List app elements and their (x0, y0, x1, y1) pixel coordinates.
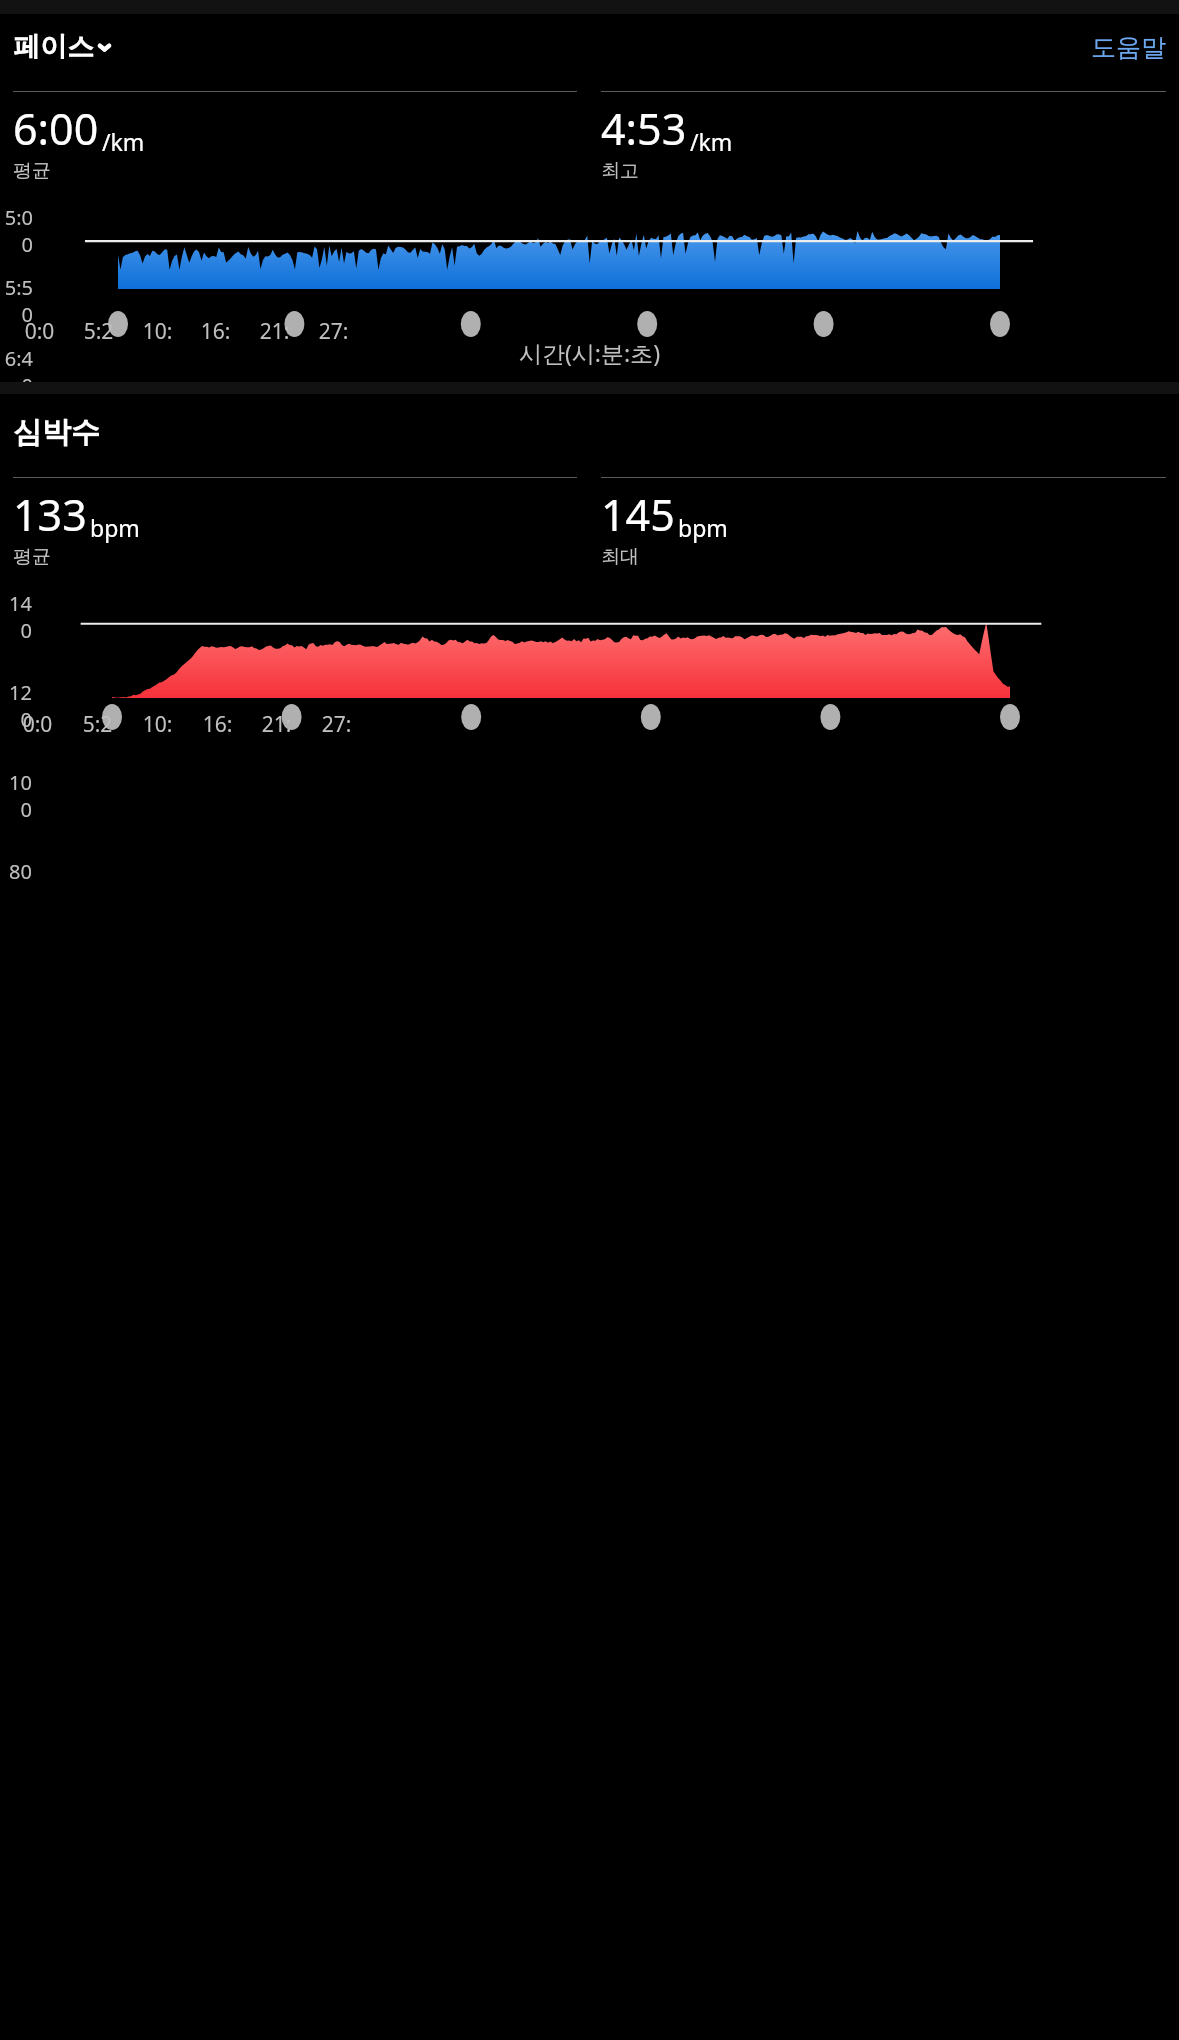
staticText: 10:51 (139, 317, 176, 346)
staticText: 7:30 (0, 415, 33, 469)
staticText: 평균 (13, 545, 51, 569)
staticText: 6:00 (13, 99, 99, 158)
button[interactable]: 도움말 (1091, 32, 1166, 63)
staticText: 최대 (601, 545, 639, 569)
staticText: 0:00 (19, 710, 56, 739)
staticText: 6:40 (0, 345, 33, 399)
staticText: 심박수 (13, 414, 100, 451)
staticText: 16:17 (199, 710, 236, 739)
button[interactable]: 심박수 (13, 414, 100, 451)
staticText: 5:00 (0, 204, 33, 258)
staticText: 5:50 (0, 274, 33, 328)
staticText: 평균 (13, 159, 51, 183)
staticText: 80 (0, 858, 32, 885)
staticText: 140 (0, 590, 32, 644)
staticText: 0:00 (21, 317, 58, 346)
staticText: /km (690, 126, 733, 157)
staticText: 10:51 (139, 710, 176, 739)
staticText: 4:53 (601, 99, 687, 158)
staticText: 100 (0, 769, 32, 823)
staticText: 8:20 (0, 485, 33, 539)
staticText: 시간(시:분:초) (0, 337, 1179, 368)
staticText: 27:08 (315, 317, 352, 346)
staticText: 도움말 (1091, 32, 1166, 63)
staticText: 5:26 (80, 317, 117, 346)
staticText: 최고 (601, 159, 639, 183)
staticText: 16:17 (197, 317, 234, 346)
staticText: 5:26 (79, 710, 116, 739)
staticText: 145 (601, 485, 675, 544)
staticText: bpm (90, 512, 140, 543)
staticText: /km (102, 126, 145, 157)
staticText: 27:08 (318, 710, 355, 739)
staticText: 21:42 (256, 317, 293, 346)
button[interactable]: 페이스 (13, 30, 110, 64)
staticText: 21:42 (258, 710, 295, 739)
staticText: 133 (13, 485, 87, 544)
staticText: bpm (678, 512, 728, 543)
staticText: 페이스 (13, 30, 94, 64)
staticText: 120 (0, 679, 32, 733)
